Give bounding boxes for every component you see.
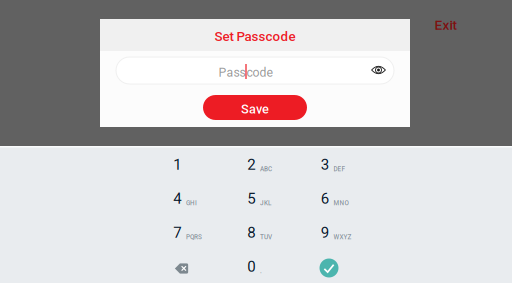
staticText: Set Passcode	[214, 29, 295, 44]
button[interactable]: 7	[146, 216, 220, 250]
button[interactable]: 8	[220, 216, 294, 250]
button[interactable]: 4	[146, 182, 220, 216]
staticText: 2	[247, 156, 255, 173]
staticText: Save	[241, 101, 269, 116]
button[interactable]: Show passcode	[364, 58, 392, 82]
staticText: 1	[173, 156, 181, 173]
staticText: 5	[247, 190, 255, 207]
staticText: 0	[247, 258, 255, 275]
staticText: ABC	[260, 165, 272, 173]
staticText: TUV	[260, 233, 272, 241]
staticText: DEF	[333, 165, 345, 173]
staticText: Pass	[218, 65, 245, 80]
staticText: GHI	[186, 199, 197, 207]
staticText: 6	[321, 190, 329, 207]
staticText: PQRS	[186, 233, 202, 241]
staticText: WXYZ	[333, 233, 351, 241]
staticText: JKL	[260, 199, 271, 207]
button[interactable]: Save	[203, 95, 307, 120]
staticText: .	[260, 267, 262, 275]
button[interactable]: 3	[294, 148, 368, 182]
staticText: 9	[321, 224, 329, 241]
staticText: MNO	[333, 199, 348, 207]
staticText: code	[247, 65, 274, 80]
staticText: 8	[247, 224, 255, 241]
button[interactable]: 6	[294, 182, 368, 216]
button[interactable]: Done	[294, 250, 368, 283]
button[interactable]: 9	[294, 216, 368, 250]
button[interactable]: Exit	[423, 14, 469, 36]
button[interactable]: 1	[146, 148, 220, 182]
staticText: 7	[173, 224, 181, 241]
button[interactable]: 5	[220, 182, 294, 216]
button[interactable]: 0	[220, 250, 294, 283]
button[interactable]: Delete	[146, 250, 220, 283]
staticText: 4	[173, 190, 181, 207]
staticText: Exit	[434, 17, 457, 33]
staticText: 3	[321, 156, 329, 173]
button[interactable]: 2	[220, 148, 294, 182]
